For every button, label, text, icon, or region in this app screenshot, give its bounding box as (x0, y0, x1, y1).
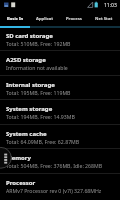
button[interactable]: System cache (0, 125, 120, 150)
button[interactable]: System storage (0, 100, 120, 125)
button[interactable]: Net Stat (89, 11, 119, 26)
staticText: Total: 195MB, Free: 119MB (6, 89, 71, 96)
button[interactable]: Applicat (30, 11, 59, 26)
staticText: Basic In (7, 16, 24, 22)
button[interactable]: SD card storage (0, 27, 120, 52)
button[interactable]: Internal storage (0, 76, 120, 101)
other: Floating menu (0, 0, 120, 200)
staticText: A2SD storage (6, 56, 46, 64)
staticText: Internal storage (6, 81, 55, 89)
button[interactable]: Process (59, 11, 89, 26)
button[interactable]: Memory (0, 149, 120, 174)
staticText: Total: 504MB, Free: 376MB, Idle: 268MB (6, 162, 103, 169)
staticText: Memory (6, 154, 31, 162)
staticText: 11:03 (104, 2, 117, 9)
staticText: Applicat (36, 16, 54, 22)
staticText: System storage (6, 105, 53, 113)
staticText: Total: 64.09MB, Free: 62.87MB (6, 138, 80, 145)
button[interactable]: Basic In (1, 11, 30, 26)
staticText: Processor (6, 179, 36, 187)
staticText: System cache (6, 130, 47, 138)
staticText: Information not available (6, 64, 68, 71)
staticText: SD card storage (6, 32, 53, 40)
staticText: Total: 194MB, Free: 14.93MB (6, 113, 75, 120)
button[interactable]: A2SD storage (0, 51, 120, 76)
staticText: Net Stat (95, 16, 113, 22)
staticText: ARMv7 Processor rev 0 (v7l) 327.68MHz (6, 187, 102, 194)
staticText: Total: 510MB, Free: 192MB (6, 40, 71, 47)
button[interactable]: Processor (0, 174, 120, 199)
staticText: Process (66, 16, 82, 22)
